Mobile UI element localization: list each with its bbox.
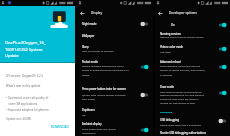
button[interactable] [155,83,230,109]
staticText: Quickly open camera without unlocking yo… [82,93,126,100]
staticText: Use sRGB [160,50,171,53]
button[interactable] [77,120,153,136]
staticText: Debug mode when USB is connected [160,123,201,126]
button[interactable] [155,29,230,41]
staticText: USB debugging [160,118,179,122]
staticText: Developer options [169,11,197,15]
staticText: OnePlus3Oxygen_16_ 1609141252 System Upd… [5,40,46,58]
staticText: Debugging [160,111,173,114]
staticText: When unlocked, reboot will offer the opt… [160,64,206,76]
staticText: DOWNLOAD [51,125,69,129]
staticText: Wake screen when you receive notificatio… [82,127,116,134]
staticText: Prevent mistaken operations of touch scr… [82,64,129,76]
staticText: Advanced reboot [160,60,181,64]
button[interactable] [155,129,230,136]
staticText: Revoke USB debugging authorizations [160,131,206,134]
button[interactable] [77,85,153,106]
button[interactable] [155,115,230,128]
staticText: Ambient display [82,122,102,126]
staticText: OS version: OxygenOS 3.2.6 [6,74,44,78]
button[interactable] [77,18,153,30]
staticText: • Optimized voice call quality of some I… [6,96,49,106]
staticText: Running services [160,32,181,36]
button[interactable]: Switch on [218,22,227,28]
button[interactable]: Switch off [140,21,149,27]
button[interactable] [77,41,153,55]
staticText: On [171,23,175,27]
staticText: After 30 seconds of inactivity [82,49,114,52]
staticText: Display [91,11,103,15]
button[interactable] [77,106,153,120]
staticText: Off [82,113,86,116]
button[interactable]: Switch off [140,92,149,98]
staticText: Picture color mode [160,45,184,49]
staticText: What's new in this update [6,84,41,88]
button[interactable]: Switch on [218,64,227,70]
staticText: Press power button twice for camera [82,87,126,90]
staticText: Pocket mode [82,60,98,64]
staticText: Doze reduces battery consumption by defe… [160,90,204,105]
staticText: Sleep [82,45,89,49]
button[interactable]: DOWNLOAD [49,123,71,131]
button[interactable] [155,57,230,83]
button[interactable]: Switch on [140,64,149,70]
staticText: Update size: 40 MB [6,117,31,121]
staticText: Night mode [82,22,97,26]
staticText: • Improved adaptive brightness [6,108,49,112]
button[interactable]: Switch off [218,118,227,124]
button[interactable]: Back [78,9,86,17]
button[interactable] [155,18,230,29]
button[interactable] [155,42,230,56]
button[interactable] [77,30,153,41]
staticText: Doze mode [160,85,174,89]
button[interactable]: Switch on [218,46,227,52]
staticText: View and control currently running servi… [160,36,204,39]
staticText: Daydream [82,108,95,112]
button[interactable]: Switch on [140,127,149,133]
staticText: Wallpaper [82,34,95,38]
button[interactable]: Switch on [218,90,227,96]
button[interactable] [77,56,153,84]
button[interactable]: Back [156,9,164,17]
